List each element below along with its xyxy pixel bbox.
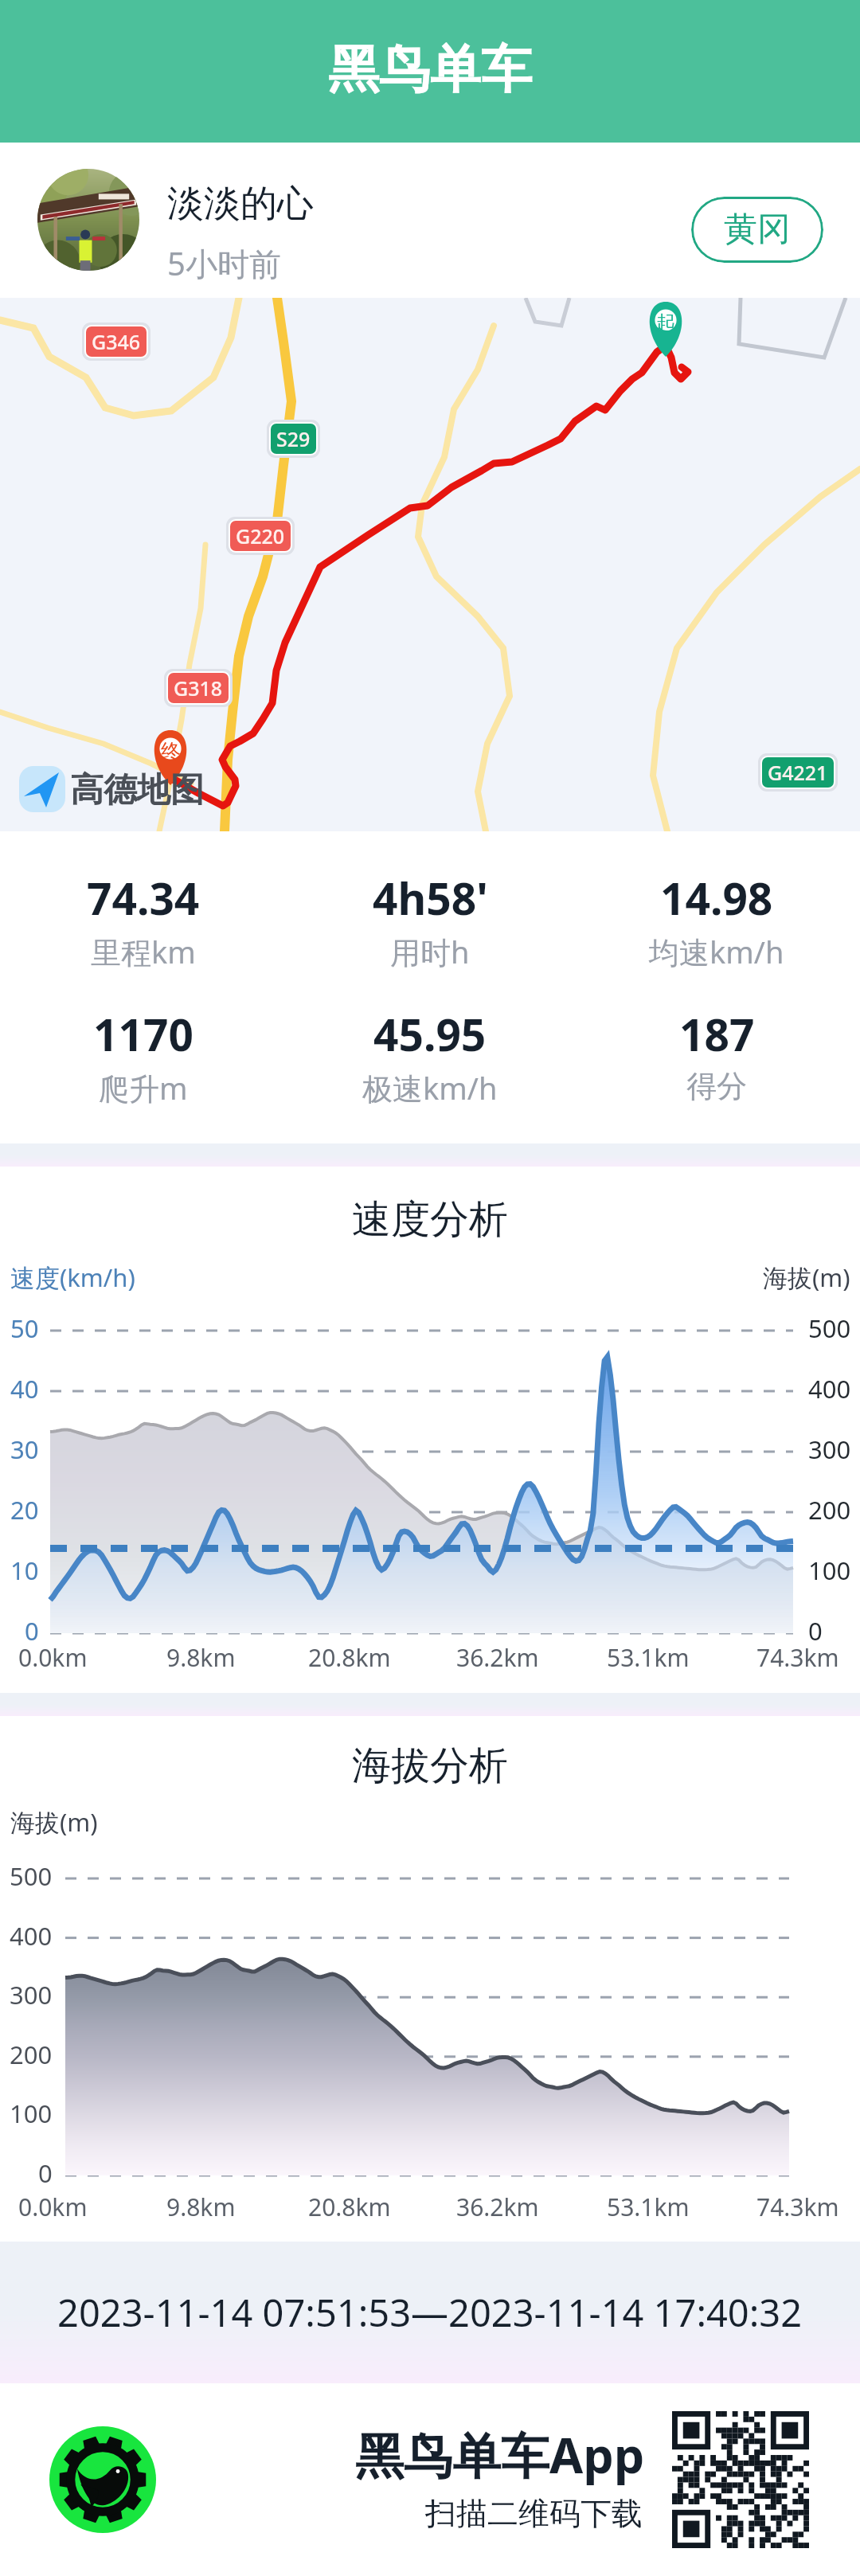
staticText: 9.8km xyxy=(166,2191,236,2223)
button[interactable]: 4h58' xyxy=(287,831,573,972)
button[interactable]: 黄冈 xyxy=(691,197,823,263)
staticText: 得分 xyxy=(686,1067,747,1105)
staticText: 500 xyxy=(808,1311,851,1345)
staticText: 速度分析 xyxy=(0,1195,860,1245)
staticText: 53.1km xyxy=(607,2191,690,2223)
staticText: 0.0km xyxy=(18,1641,88,1674)
staticText: 30 xyxy=(10,1433,39,1466)
staticText: 极速km/h xyxy=(362,1067,498,1108)
staticText: 0 xyxy=(25,1614,39,1648)
button[interactable]: Download QR code xyxy=(672,2411,809,2548)
staticText: 爬升m xyxy=(99,1067,188,1108)
staticText: 起 xyxy=(656,311,676,335)
staticText: S29 xyxy=(276,425,311,452)
staticText: 0 xyxy=(808,1614,823,1648)
staticText: 高德地图 xyxy=(70,769,204,811)
staticText: 20 xyxy=(10,1493,39,1526)
staticText: 100 xyxy=(808,1554,851,1587)
staticText: 海拔(m) xyxy=(10,1805,98,1839)
button[interactable]: 1170 xyxy=(0,967,287,1108)
staticText: 400 xyxy=(10,1919,53,1953)
staticText: 200 xyxy=(10,2038,53,2071)
button[interactable]: 187 xyxy=(573,967,860,1105)
staticText: 1170 xyxy=(93,1004,193,1064)
staticText: 500 xyxy=(10,1859,53,1893)
staticText: 74.3km xyxy=(756,2191,839,2223)
staticText: 0.0km xyxy=(18,2191,88,2223)
staticText: 300 xyxy=(10,1978,53,2011)
staticText: 45.95 xyxy=(373,1004,487,1064)
staticText: 用时h xyxy=(390,931,470,972)
staticText: 400 xyxy=(808,1372,851,1405)
staticText: 均速km/h xyxy=(649,931,784,972)
button[interactable]: App logo xyxy=(49,2426,156,2533)
staticText: 36.2km xyxy=(456,1641,539,1674)
staticText: 300 xyxy=(808,1433,851,1466)
staticText: 14.98 xyxy=(660,868,773,928)
staticText: 40 xyxy=(10,1372,39,1405)
staticText: 黄冈 xyxy=(724,209,791,251)
staticText: 0 xyxy=(38,2156,53,2190)
staticText: 187 xyxy=(679,1004,755,1064)
staticText: 9.8km xyxy=(166,1641,236,1674)
staticText: 淡淡的心 xyxy=(167,181,314,227)
staticText: 4h58' xyxy=(373,868,488,928)
staticText: 黑鸟单车App xyxy=(355,2422,645,2488)
button[interactable]: Route map xyxy=(0,298,860,831)
staticText: 20.8km xyxy=(308,1641,391,1674)
staticText: 74.3km xyxy=(756,1641,839,1674)
staticText: 终 xyxy=(161,739,181,764)
staticText: 海拔(m) xyxy=(763,1261,850,1294)
staticText: 20.8km xyxy=(308,2191,391,2223)
staticText: 扫描二维码下载 xyxy=(425,2494,643,2533)
button[interactable]: 14.98 xyxy=(573,831,860,972)
staticText: G4221 xyxy=(768,759,828,786)
staticText: 里程km xyxy=(91,931,196,972)
staticText: G318 xyxy=(174,674,223,702)
staticText: G346 xyxy=(92,328,141,355)
staticText: 200 xyxy=(808,1493,851,1526)
button[interactable]: 45.95 xyxy=(287,967,573,1108)
staticText: 海拔分析 xyxy=(0,1741,860,1791)
staticText: 5小时前 xyxy=(167,241,281,285)
staticText: 74.34 xyxy=(87,868,200,928)
button[interactable]: 74.34 xyxy=(0,831,287,972)
staticText: 100 xyxy=(10,2097,53,2130)
staticText: 50 xyxy=(10,1311,39,1345)
staticText: G220 xyxy=(236,522,285,549)
staticText: 黑鸟单车 xyxy=(328,37,532,102)
staticText: 2023-11-14 07:51:53—2023-11-14 17:40:32 xyxy=(57,2287,803,2338)
staticText: 53.1km xyxy=(607,1641,690,1674)
staticText: 10 xyxy=(10,1554,39,1587)
staticText: 36.2km xyxy=(456,2191,539,2223)
staticText: 速度(km/h) xyxy=(10,1261,135,1294)
